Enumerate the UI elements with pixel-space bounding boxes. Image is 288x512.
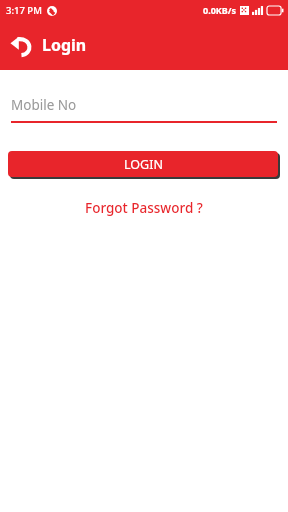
staticText: LOGIN — [124, 156, 163, 173]
staticText: Login — [42, 34, 87, 56]
staticText: 0.0KB/s — [203, 4, 237, 16]
button[interactable]: Forgot Password ? — [77, 197, 211, 219]
button[interactable]: LOGIN — [8, 151, 278, 177]
button[interactable]: Mobile No — [11, 96, 277, 123]
staticText: Mobile No — [11, 96, 77, 114]
button[interactable]: Back — [4, 28, 38, 62]
staticText: Forgot Password ? — [85, 199, 203, 217]
staticText: 3:17 PM — [6, 4, 42, 17]
